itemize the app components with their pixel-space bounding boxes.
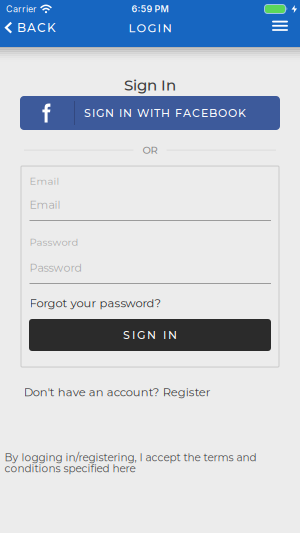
- staticText: Carrier: [6, 4, 36, 14]
- staticText: conditions specified: [4, 462, 112, 475]
- button[interactable]: Back: [1, 15, 60, 40]
- staticText: 6:59 PM: [131, 4, 168, 14]
- staticText: S I G N I N W I T H F A C E B O O K: [84, 106, 246, 120]
- button[interactable]: here: [112, 462, 135, 475]
- staticText: Email: [29, 198, 60, 211]
- button[interactable]: Menu: [266, 15, 294, 37]
- staticText: Password: [29, 236, 78, 248]
- staticText: OR: [142, 144, 157, 156]
- staticText: Email: [29, 175, 59, 187]
- staticText: Password: [29, 261, 81, 274]
- staticText: L O G I N: [128, 21, 171, 35]
- staticText: Don't have an account?: [24, 385, 163, 399]
- staticText: Forgot your password?: [29, 296, 161, 310]
- staticText: S I G N I N: [123, 328, 177, 342]
- staticText: By logging in/registering, I accept the …: [4, 451, 256, 464]
- button[interactable]: Register: [163, 385, 211, 399]
- button[interactable]: S I G N I N: [29, 319, 271, 351]
- button[interactable]: S I G N I N W I T H F A C E B O O K: [20, 96, 280, 130]
- staticText: Sign In: [124, 76, 176, 94]
- button[interactable]: Forgot your password?: [27, 294, 163, 312]
- staticText: B A C K: [17, 20, 56, 35]
- staticText: here: [112, 462, 135, 475]
- staticText: Register: [163, 385, 211, 399]
